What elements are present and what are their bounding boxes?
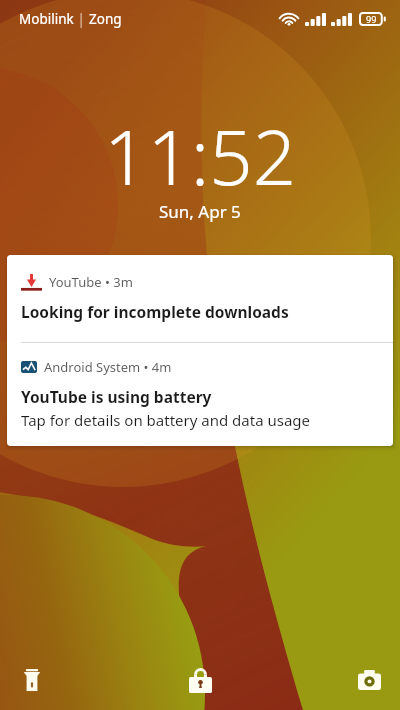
staticText: Android System • 4m xyxy=(44,358,172,376)
button[interactable]: Android System • 4m xyxy=(7,343,393,446)
staticText: 11:52 xyxy=(104,104,297,208)
button[interactable]: Unlock xyxy=(182,662,218,698)
staticText: 99 xyxy=(366,13,377,25)
button[interactable]: Flashlight xyxy=(14,662,50,698)
staticText: YouTube • 3m xyxy=(49,273,133,291)
staticText: Zong xyxy=(89,10,122,28)
staticText: Mobilink xyxy=(19,10,74,28)
button[interactable]: Camera xyxy=(351,662,387,698)
staticText: Sun, Apr 5 xyxy=(159,200,241,223)
staticText: Tap for details on battery and data usag… xyxy=(21,410,311,430)
button[interactable]: YouTube • 3m xyxy=(7,255,393,342)
staticText: YouTube is using battery xyxy=(21,386,212,407)
staticText: Looking for incomplete downloads xyxy=(21,301,289,322)
staticText: | xyxy=(74,10,89,28)
